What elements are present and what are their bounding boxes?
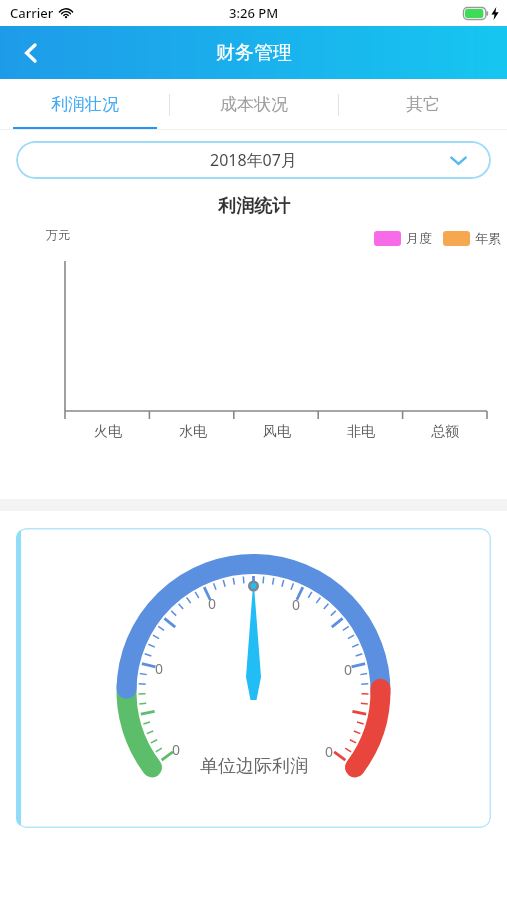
staticText: 0 (172, 740, 181, 759)
button[interactable]: 成本状况 (170, 79, 338, 130)
staticText: 0 (155, 659, 164, 678)
staticText: 利润壮况 (51, 94, 119, 115)
staticText: 非电 (347, 423, 375, 441)
staticText: 风电 (263, 423, 291, 441)
staticText: 0 (208, 594, 217, 613)
staticText: 单位边际利润 (200, 755, 308, 778)
staticText: 0 (292, 595, 301, 614)
staticText: 火电 (94, 423, 122, 441)
staticText: 0 (325, 742, 334, 761)
button[interactable]: 2018年07月 (16, 141, 491, 179)
staticText: 年累 (475, 230, 501, 246)
staticText: 0 (344, 660, 353, 679)
staticText: 水电 (179, 423, 207, 441)
button[interactable]: 0 (16, 528, 491, 828)
staticText: 万元 (46, 227, 70, 242)
staticText: 财务管理 (216, 41, 292, 65)
staticText: Carrier (10, 4, 54, 22)
staticText: 总额 (431, 423, 459, 441)
staticText: 成本状况 (220, 94, 288, 115)
button[interactable]: 利润壮况 (0, 79, 169, 130)
button[interactable]: 其它 (339, 79, 507, 130)
staticText: 其它 (406, 94, 440, 115)
staticText: 2018年07月 (210, 149, 297, 171)
staticText: 月度 (406, 230, 432, 246)
staticText: 利润统计 (218, 195, 290, 218)
button[interactable]: Back (8, 30, 54, 76)
staticText: 3:26 PM (229, 4, 279, 22)
